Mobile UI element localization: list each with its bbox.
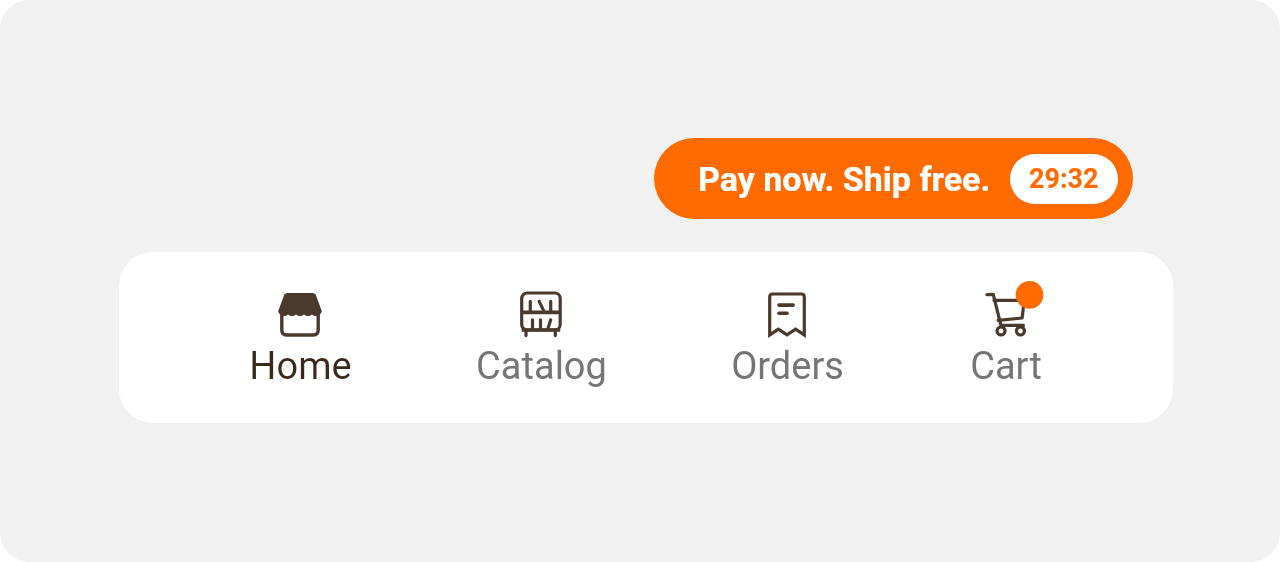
staticText: Pay now. Ship free.	[698, 159, 991, 199]
staticText: Cart	[970, 344, 1042, 389]
button[interactable]: Home	[220, 252, 380, 423]
staticText: Catalog	[476, 344, 607, 389]
button[interactable]: Orders	[707, 252, 867, 423]
staticText: Orders	[731, 344, 844, 389]
button[interactable]: Catalog	[461, 252, 621, 423]
button[interactable]: Cart	[926, 252, 1086, 423]
button[interactable]: Pay now. Ship free.	[654, 138, 1133, 219]
staticText: 29:32	[1029, 163, 1099, 195]
staticText: Home	[249, 344, 352, 389]
